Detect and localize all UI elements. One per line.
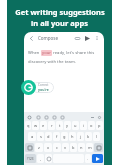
staticText: i — [83, 123, 85, 128]
button[interactable]: a — [28, 132, 36, 141]
button[interactable]: i — [80, 121, 87, 130]
button[interactable]: l — [93, 132, 100, 141]
button[interactable]: u — [72, 121, 79, 130]
button[interactable]: , — [37, 154, 44, 163]
staticText: f — [56, 134, 58, 139]
button[interactable]: g — [61, 132, 68, 141]
staticText: u — [74, 123, 77, 128]
button[interactable]: j — [77, 132, 84, 141]
button[interactable]: Collapse — [89, 114, 95, 120]
button[interactable]: v — [62, 143, 69, 152]
staticText: n — [80, 145, 83, 150]
button[interactable]: y — [64, 121, 71, 130]
button[interactable]: c — [53, 143, 61, 152]
staticText: discovery with the team. — [28, 59, 76, 65]
staticText: s — [40, 134, 42, 139]
staticText: l — [96, 134, 98, 139]
button[interactable]: Backspace — [94, 143, 103, 152]
staticText: b — [72, 145, 75, 150]
staticText: g — [63, 134, 66, 139]
staticText: d — [47, 134, 50, 139]
button[interactable]: b — [70, 143, 77, 152]
button[interactable]: m — [86, 143, 93, 152]
button[interactable]: Keyboard tool 1 — [35, 114, 41, 120]
staticText: in all your apps — [31, 18, 88, 28]
staticText: you're — [38, 87, 49, 92]
button[interactable]: r — [48, 121, 55, 130]
button[interactable]: n — [78, 143, 85, 152]
button[interactable]: q — [25, 121, 31, 130]
button[interactable]: Send — [83, 34, 91, 42]
staticText: When — [28, 50, 41, 56]
button[interactable]: k — [85, 132, 92, 141]
button[interactable]: x — [44, 143, 52, 152]
staticText: a — [31, 134, 34, 139]
button[interactable]: Shift — [25, 143, 34, 152]
staticText: Compose — [38, 35, 58, 41]
button[interactable]: Send — [92, 154, 103, 163]
staticText: j — [80, 134, 82, 139]
button[interactable]: Grammarly — [21, 80, 36, 95]
button[interactable]: Settings — [96, 114, 102, 120]
button[interactable]: Keyboard tool 4 — [59, 114, 65, 120]
button[interactable]: h — [69, 132, 76, 141]
button[interactable]: w — [32, 121, 39, 130]
button[interactable]: p — [96, 121, 103, 130]
staticText: w — [34, 123, 38, 128]
staticText: p — [98, 123, 101, 128]
staticText: your — [42, 50, 51, 56]
button[interactable]: e — [40, 121, 47, 130]
button[interactable]: Attach — [73, 34, 81, 42]
button[interactable]: Symbols — [25, 154, 36, 163]
staticText: m — [88, 145, 92, 150]
staticText: Correct — [38, 83, 49, 87]
staticText: ready, let's share this — [52, 50, 95, 56]
staticText: e — [42, 123, 45, 128]
staticText: , — [40, 156, 42, 161]
button[interactable]: s — [37, 132, 44, 141]
button[interactable]: Emoji — [45, 154, 52, 163]
button[interactable]: t — [56, 121, 63, 130]
staticText: o — [90, 123, 93, 128]
button[interactable]: o — [88, 121, 95, 130]
button[interactable]: Keyboard tool 3 — [51, 114, 57, 120]
button[interactable]: f — [53, 132, 60, 141]
button[interactable]: Back — [27, 34, 35, 42]
staticText: x — [47, 145, 50, 150]
staticText: q — [27, 123, 30, 128]
staticText: t — [59, 123, 61, 128]
staticText: k — [87, 134, 90, 139]
staticText: h — [71, 134, 74, 139]
staticText: r — [51, 123, 53, 128]
staticText: . — [87, 156, 89, 161]
button[interactable]: More options — [93, 34, 101, 42]
staticText: v — [64, 145, 67, 150]
staticText: Get writing suggestions — [15, 7, 105, 17]
staticText: z — [38, 145, 40, 150]
button[interactable]: Grammarly keyboard — [26, 114, 32, 120]
staticText: c — [56, 145, 58, 150]
button[interactable]: Correct — [32, 82, 54, 93]
button[interactable]: Keyboard tool 2 — [43, 114, 49, 120]
button[interactable]: z — [35, 143, 43, 152]
staticText: ?123 — [27, 157, 34, 161]
button[interactable]: . — [85, 154, 91, 163]
staticText: y — [66, 123, 69, 128]
button[interactable]: d — [45, 132, 52, 141]
